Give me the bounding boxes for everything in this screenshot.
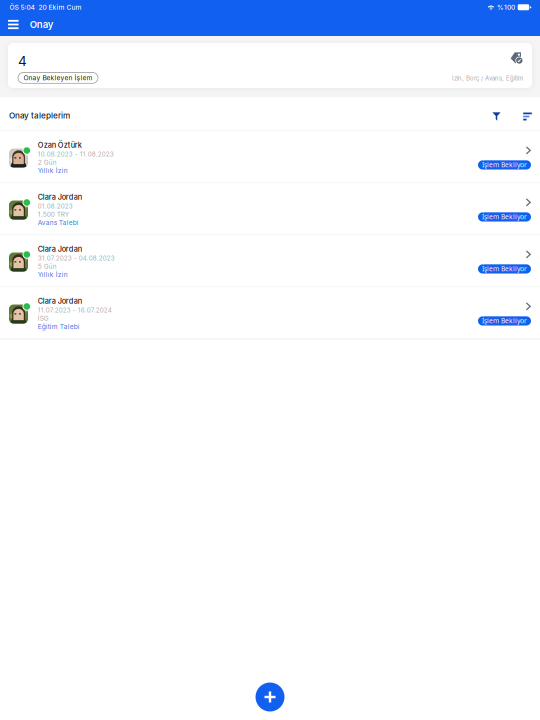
button[interactable]: Clara Jordan [0,183,540,235]
staticText: Eğitim Talebi [38,323,80,331]
staticText: İSG [38,314,49,322]
staticText: İşlem Bekliyor [482,212,527,221]
staticText: 31.07.2023 - 04.08.2023 [38,254,115,262]
staticText: %100 [497,3,515,11]
staticText: 5 Gün [38,262,57,270]
staticText: 20 Ekim Cum [38,3,81,11]
staticText: Clara Jordan [38,244,82,253]
staticText: Ozan Öztürk [38,140,82,149]
button[interactable]: Filtrele [483,99,516,128]
staticText: 1.500 TRY [38,210,69,218]
button[interactable]: Ozan Öztürk [0,131,540,183]
button[interactable]: Sırala [516,99,538,128]
staticText: 10.08.2023 - 11.08.2023 [38,150,114,158]
staticText: Avans Talebi [38,219,79,227]
staticText: Clara Jordan [38,192,82,201]
staticText: Onay Bekleyen İşlem [23,74,92,82]
button[interactable]: Menü [2,13,24,35]
staticText: İşlem Bekliyor [482,316,527,325]
staticText: 4 [18,53,27,69]
button[interactable]: Clara Jordan [0,235,540,287]
staticText: Yıllık İzin [38,167,68,175]
staticText: 01.08.2023 [38,202,73,210]
staticText: İşlem Bekliyor [482,264,527,273]
staticText: 11.07.2023 - 16.07.2024 [38,306,112,314]
staticText: Onay [30,19,54,30]
staticText: Clara Jordan [38,296,82,305]
staticText: İşlem Bekliyor [482,160,527,169]
staticText: Onay taleplerim [9,111,70,120]
staticText: 2 Gün [38,158,57,166]
button[interactable]: Yeni talep [255,682,284,711]
staticText: Yıllık İzin [38,271,68,279]
button[interactable]: Clara Jordan [0,287,540,339]
staticText: ÖS 5:04 [9,3,34,11]
staticText: İzin, Borç / Avans, Eğitim [452,75,523,82]
